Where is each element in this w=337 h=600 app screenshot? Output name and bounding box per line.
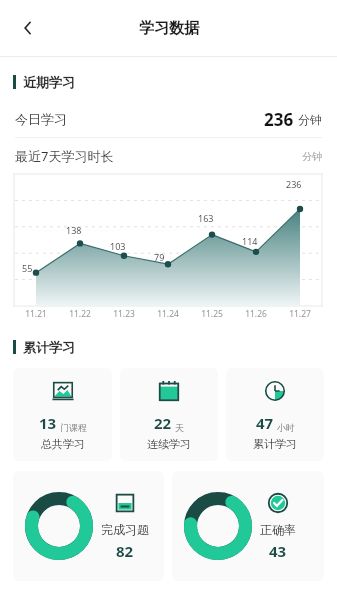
button[interactable]: 22	[120, 368, 218, 461]
staticText: 55	[22, 262, 33, 274]
staticText: 103	[110, 240, 126, 252]
button[interactable]: Back	[8, 8, 48, 48]
staticText: 163	[198, 212, 214, 224]
staticText: 11.22	[58, 308, 102, 320]
staticText: 138	[66, 224, 82, 236]
button[interactable]: 47	[226, 368, 324, 461]
button[interactable]: 正确率	[172, 471, 324, 581]
staticText: 11.21	[14, 308, 58, 320]
staticText: 正确率	[260, 522, 296, 537]
staticText: 82	[116, 541, 134, 561]
staticText: 236	[286, 178, 302, 190]
staticText: 学习数据	[139, 19, 199, 38]
staticText: 近期学习	[23, 74, 75, 90]
staticText: 79	[154, 251, 165, 263]
staticText: 小时	[277, 422, 295, 433]
staticText: 11.27	[278, 308, 322, 320]
staticText: 11.24	[146, 308, 190, 320]
staticText: 22	[154, 413, 172, 433]
staticText: 连续学习	[147, 437, 191, 451]
staticText: 分钟	[298, 112, 322, 127]
button[interactable]: 13	[13, 368, 112, 461]
staticText: 总共学习	[41, 437, 85, 451]
staticText: 分钟	[302, 150, 322, 163]
staticText: 累计学习	[253, 437, 297, 451]
staticText: 今日学习	[15, 111, 67, 127]
staticText: 43	[269, 541, 287, 561]
staticText: 天	[175, 422, 184, 433]
staticText: 114	[242, 235, 258, 247]
staticText: 13	[39, 413, 57, 433]
staticText: 47	[256, 413, 274, 433]
staticText: 236	[264, 108, 294, 131]
staticText: 完成习题	[101, 522, 149, 537]
staticText: 11.26	[234, 308, 278, 320]
staticText: 最近7天学习时长	[15, 147, 114, 165]
staticText: 11.23	[102, 308, 146, 320]
button[interactable]: 今日学习	[0, 101, 337, 137]
staticText: 门课程	[60, 422, 87, 433]
staticText: 11.25	[190, 308, 234, 320]
button[interactable]: 完成习题	[13, 471, 164, 581]
staticText: 累计学习	[23, 339, 75, 355]
